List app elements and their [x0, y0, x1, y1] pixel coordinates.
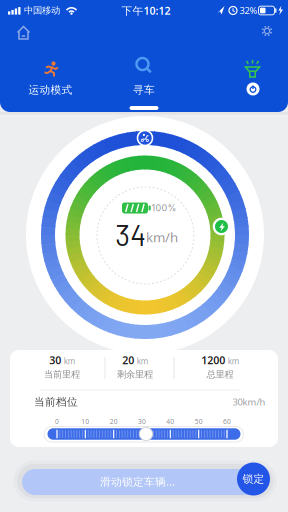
button[interactable] [260, 24, 274, 38]
staticText: 下午10:12 [121, 3, 170, 18]
staticText: 32% [239, 4, 257, 17]
staticText: 滑动锁定车辆... [100, 474, 175, 489]
staticText: 30 [49, 353, 61, 367]
staticText: 30km/h [232, 396, 265, 408]
button[interactable]: 运动模式 [22, 55, 86, 105]
button[interactable]: 锁定 [236, 462, 270, 496]
staticText: 剩余里程 [117, 369, 153, 380]
staticText: km [137, 356, 148, 366]
staticText: 50 [195, 417, 203, 426]
staticText: 中国移动 [24, 5, 60, 16]
staticText: 34 [115, 217, 146, 252]
staticText: 20 [122, 353, 134, 367]
staticText: 60 [223, 417, 231, 426]
staticText: 当前档位 [34, 395, 78, 408]
staticText: km/h [146, 228, 178, 246]
button[interactable]: 滑动锁定车辆... [22, 469, 266, 495]
staticText: 0 [55, 417, 59, 426]
button[interactable] [47, 428, 240, 440]
staticText: 20 [110, 417, 118, 426]
staticText: 当前里程 [44, 369, 80, 380]
button[interactable] [239, 58, 265, 82]
button[interactable]: 寻车 [113, 53, 175, 111]
staticText: km [64, 356, 75, 366]
staticText: 总里程 [206, 369, 233, 380]
button[interactable] [13, 24, 34, 41]
staticText: 30 [138, 417, 146, 426]
button[interactable] [244, 80, 262, 98]
staticText: km [228, 356, 239, 366]
staticText: 锁定 [242, 472, 264, 485]
staticText: 40 [166, 417, 174, 426]
staticText: 1200 [201, 353, 225, 367]
staticText: 运动模式 [28, 83, 72, 96]
staticText: 寻车 [133, 83, 155, 96]
staticText: 10 [81, 417, 89, 426]
staticText: 100% [151, 202, 176, 213]
